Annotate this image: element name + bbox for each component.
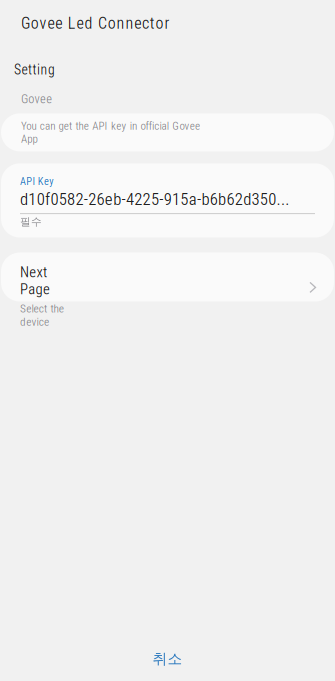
staticText: 취소 (152, 649, 182, 668)
staticText: 필수 (20, 215, 42, 228)
button[interactable]: Next Page (1, 252, 334, 301)
staticText: Select the device (20, 302, 64, 328)
staticText: d10f0582-26eb-4225-915a-b6b62d350... (20, 190, 289, 209)
staticText: Setting (14, 62, 55, 78)
staticText: Next Page (20, 263, 50, 298)
button[interactable]: 취소 (0, 640, 335, 677)
staticText: You can get the API key in official Gove… (21, 119, 200, 145)
staticText: Govee (21, 92, 52, 106)
staticText: API Key (20, 175, 53, 188)
staticText: Govee Led Connector (21, 14, 169, 33)
